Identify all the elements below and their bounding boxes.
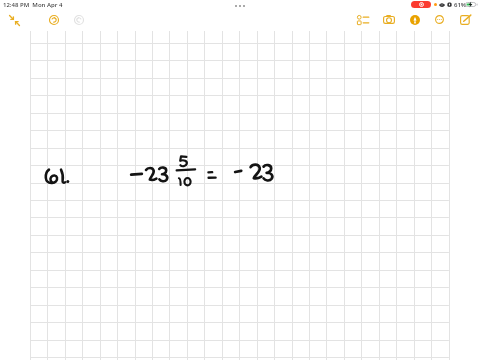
button[interactable]: More: [435, 15, 444, 24]
staticText: 12:48 PM Mon Apr 4: [3, 1, 63, 9]
button[interactable]: Redo: [74, 15, 84, 25]
button[interactable]: Undo: [49, 15, 59, 25]
staticText: 61%: [454, 1, 467, 9]
button[interactable]: Checklist: [357, 15, 369, 25]
button[interactable]: Insert photo: [383, 15, 395, 24]
button[interactable]: Markup: [410, 15, 420, 25]
button[interactable]: New note: [460, 15, 471, 25]
button[interactable]: Collapse: [9, 15, 20, 25]
